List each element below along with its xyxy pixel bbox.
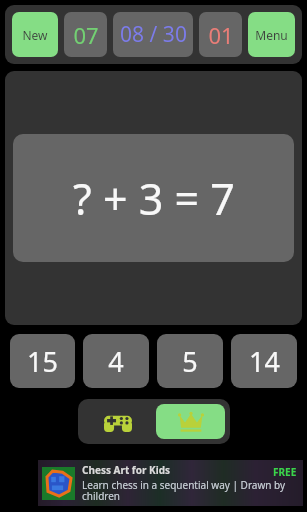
staticText: FREE bbox=[273, 465, 297, 479]
button[interactable]: 01 bbox=[199, 12, 242, 57]
staticText: 4 bbox=[108, 343, 124, 380]
button[interactable]: 14 bbox=[231, 334, 297, 388]
button[interactable]: 07 bbox=[64, 12, 107, 57]
button[interactable]: 15 bbox=[10, 334, 75, 388]
staticText: 01 bbox=[208, 20, 234, 50]
button[interactable]: Menu bbox=[248, 12, 295, 57]
staticText: 14 bbox=[249, 343, 280, 380]
button[interactable]: New bbox=[12, 12, 58, 57]
staticText: 08 / 30 bbox=[120, 20, 187, 49]
button[interactable]: 08 / 30 bbox=[113, 12, 193, 57]
staticText: 15 bbox=[27, 343, 58, 380]
staticText: 5 bbox=[182, 343, 198, 380]
staticText: Menu bbox=[255, 27, 288, 43]
button[interactable]: Chess Art for Kids bbox=[38, 460, 303, 506]
staticText: Chess Art for Kids bbox=[82, 463, 171, 477]
button[interactable]: 5 bbox=[157, 334, 223, 388]
staticText: 07 bbox=[73, 20, 99, 50]
button[interactable]: Premium bbox=[156, 404, 225, 439]
staticText: ? + 3 = 7 bbox=[73, 169, 235, 228]
button[interactable]: ? + 3 = 7 bbox=[13, 134, 294, 262]
button[interactable]: Games bbox=[83, 404, 152, 439]
staticText: New bbox=[22, 27, 48, 43]
button[interactable]: 4 bbox=[83, 334, 149, 388]
staticText: Learn chess in a sequential way | Drawn … bbox=[82, 478, 299, 503]
